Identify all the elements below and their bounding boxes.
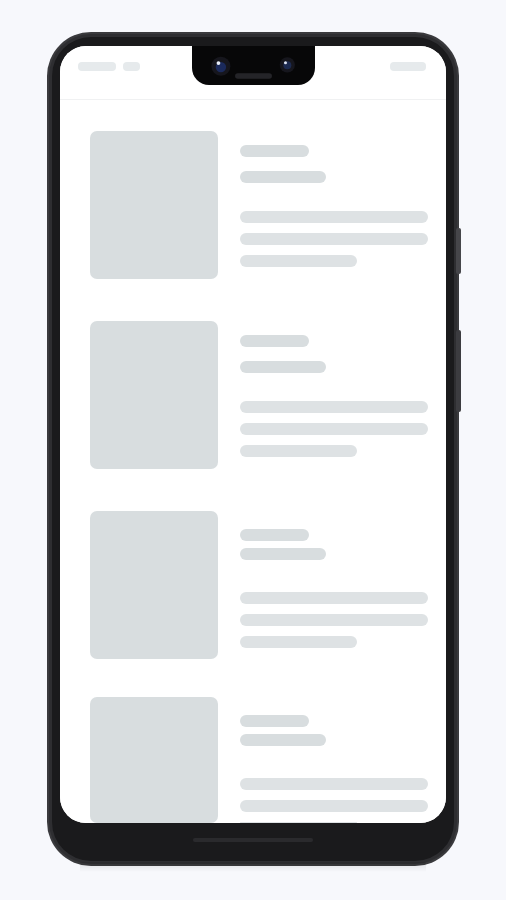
other: Volume button [456,330,461,412]
button[interactable] [60,697,446,823]
button[interactable] [60,511,446,659]
other: Power button [456,228,461,274]
button[interactable] [60,131,446,279]
button[interactable] [60,321,446,469]
